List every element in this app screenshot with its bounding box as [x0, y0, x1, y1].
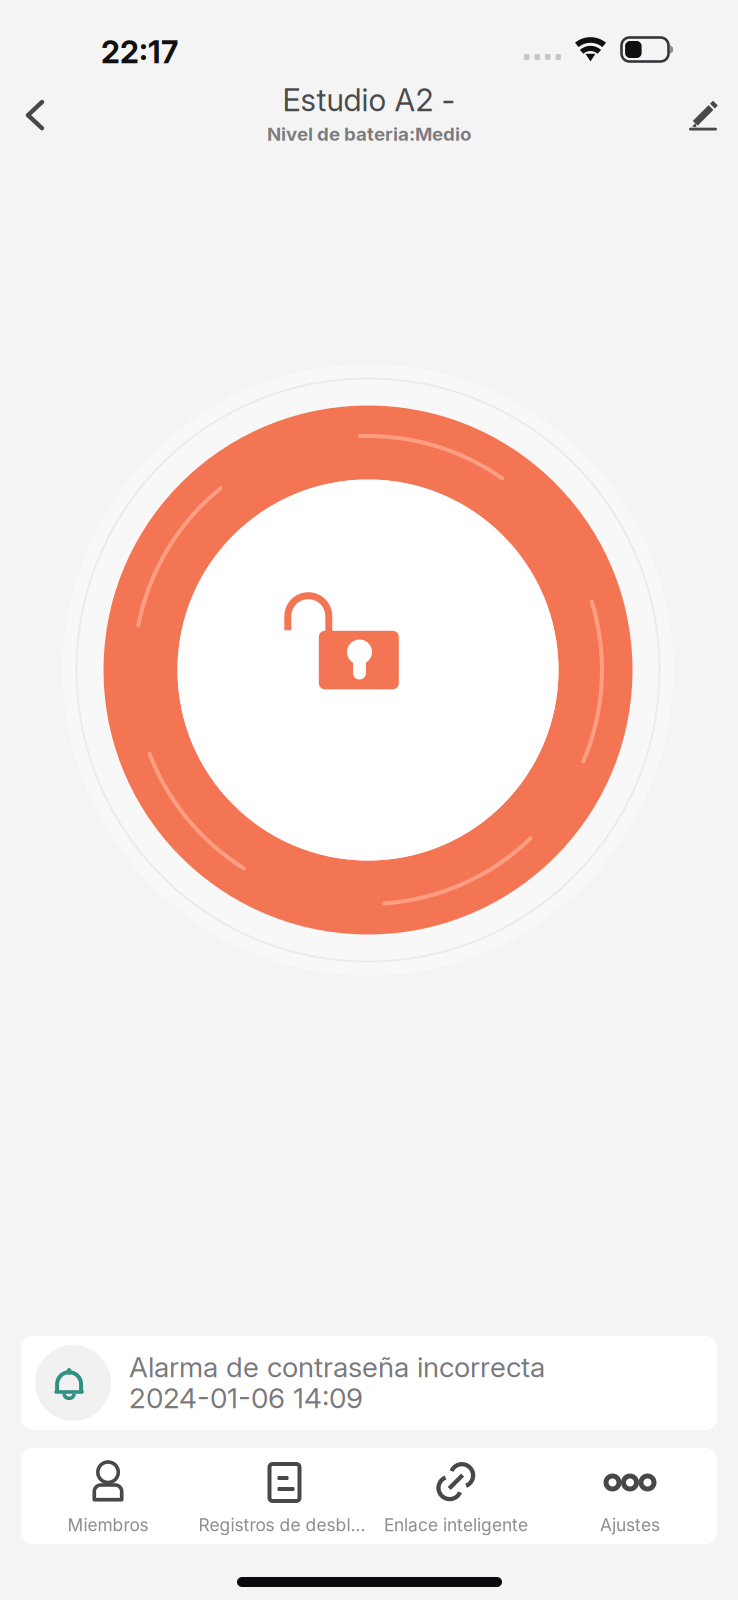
button[interactable]: Enlace inteligente — [369, 1448, 543, 1544]
staticText: Ajustes — [600, 1514, 660, 1535]
button[interactable]: Alarma de contraseña incorrecta — [21, 1336, 717, 1430]
button[interactable]: Back — [10, 90, 80, 148]
button[interactable]: Edit — [671, 85, 737, 145]
staticText: Registros de desbl... — [198, 1514, 365, 1535]
button[interactable]: Unlock — [68, 370, 668, 970]
staticText: Nivel de bateria:Medio — [267, 123, 471, 145]
button[interactable]: Ajustes — [543, 1448, 717, 1544]
button[interactable]: Registros de desbl... — [195, 1448, 369, 1544]
staticText: 22:17 — [101, 33, 178, 70]
staticText: Enlace inteligente — [384, 1514, 528, 1535]
staticText: Miembros — [67, 1514, 148, 1535]
staticText: 2024-01-06 14:09 — [129, 1381, 363, 1415]
button[interactable]: Miembros — [21, 1448, 195, 1544]
staticText: Estudio A2 - — [282, 81, 455, 118]
staticText: Alarma de contraseña incorrecta — [129, 1350, 545, 1384]
